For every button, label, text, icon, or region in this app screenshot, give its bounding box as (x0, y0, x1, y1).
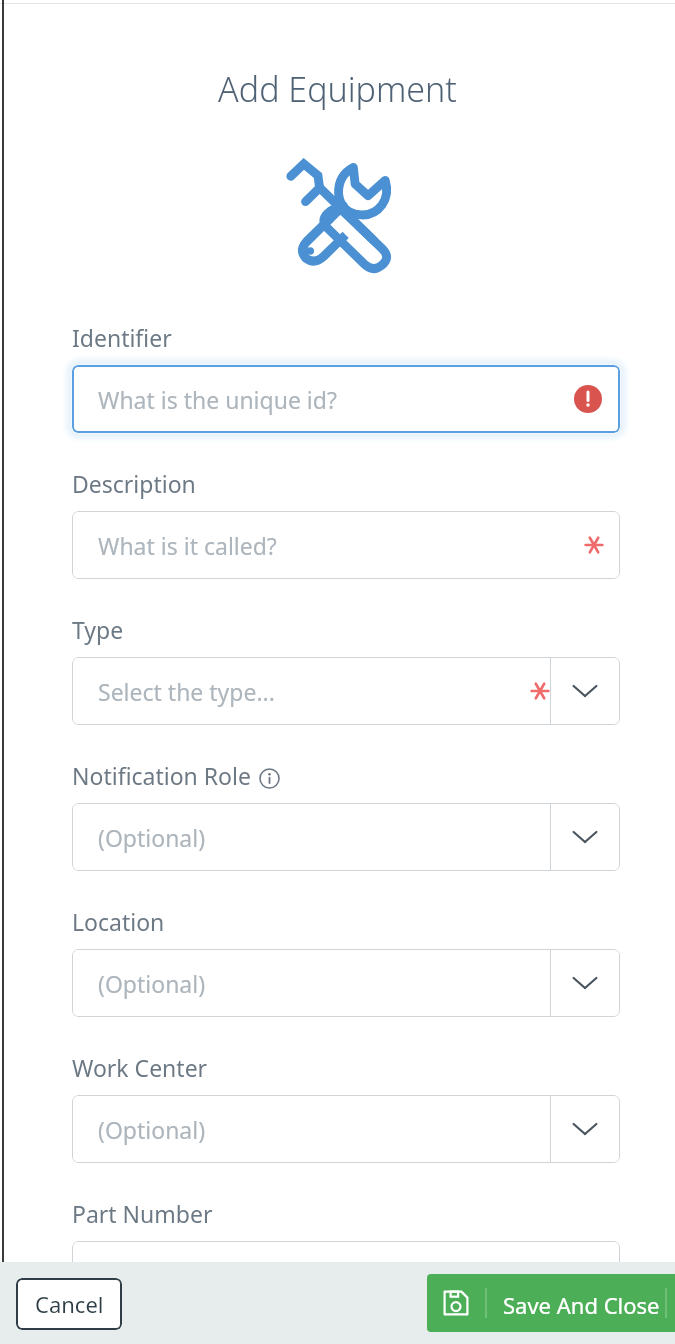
button[interactable]: What is the unique id? (72, 365, 620, 433)
button[interactable]: Open dropdown (550, 657, 620, 725)
staticText: (Optional) (98, 968, 206, 999)
button[interactable]: Select the type... (72, 657, 620, 725)
button[interactable]: (Optional) (72, 949, 620, 1017)
staticText: What is it called? (98, 530, 277, 561)
button[interactable]: What is it called? (72, 511, 620, 579)
staticText: Work Center (72, 1052, 208, 1083)
staticText: Select the type... (98, 676, 275, 707)
staticText: Save And Close (503, 1290, 660, 1320)
staticText: (Optional) (98, 1114, 206, 1145)
staticText: What is the unique id? (98, 384, 337, 415)
button[interactable]: Cancel (16, 1278, 122, 1330)
staticText: Type (72, 614, 124, 645)
staticText: (Optional) (98, 822, 206, 853)
staticText: Identifier (72, 322, 172, 353)
staticText: Notification Role (72, 760, 251, 791)
staticText: Add Equipment (218, 66, 457, 112)
button[interactable]: (Optional) (72, 1095, 620, 1163)
button[interactable]: Open dropdown (550, 949, 620, 1017)
staticText: Location (72, 906, 165, 937)
staticText: Description (72, 468, 196, 499)
button[interactable]: Open dropdown (550, 1095, 620, 1163)
button[interactable]: Open dropdown (550, 803, 620, 871)
staticText: Cancel (35, 1289, 104, 1319)
button[interactable]: (Optional) (72, 803, 620, 871)
button[interactable]: Save And Close (427, 1274, 675, 1332)
other: Required field error (574, 385, 602, 413)
button[interactable] (72, 1241, 620, 1309)
staticText: Part Number (72, 1198, 213, 1229)
